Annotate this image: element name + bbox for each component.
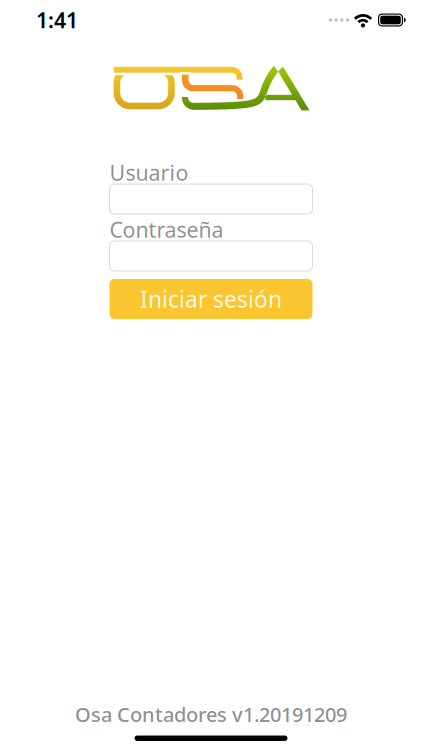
staticText: Iniciar sesión <box>140 284 282 314</box>
button[interactable]: Iniciar sesión <box>109 279 312 319</box>
staticText: Usuario <box>109 158 188 187</box>
staticText: 1:41 <box>36 6 78 34</box>
staticText: Osa Contadores v1.20191209 <box>75 701 347 727</box>
staticText: Contraseña <box>109 215 223 244</box>
